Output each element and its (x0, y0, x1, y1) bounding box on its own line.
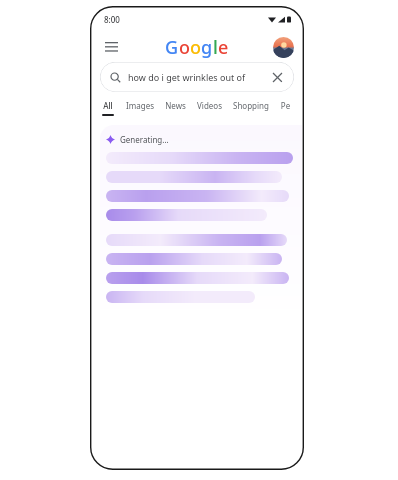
staticText: 8:00 (104, 14, 120, 25)
button[interactable]: Menu (100, 36, 122, 58)
button[interactable]: Videos (197, 100, 222, 114)
staticText: l (213, 35, 218, 60)
staticText: Perspective (280, 100, 291, 111)
staticText: o (190, 35, 201, 60)
staticText: Shopping (233, 100, 269, 111)
button[interactable]: Shopping (233, 100, 269, 114)
button[interactable]: All (102, 100, 114, 116)
button[interactable]: Perspective (280, 100, 291, 114)
staticText: Images (126, 100, 154, 111)
staticText: e (218, 35, 229, 60)
staticText: how do i get wrinkles out of cloth... (128, 71, 266, 83)
button[interactable]: how do i get wrinkles out of cloth... (100, 62, 294, 92)
staticText: News (165, 100, 186, 111)
staticText: g (201, 35, 213, 60)
button[interactable]: Images (126, 100, 154, 114)
button[interactable]: Account (273, 37, 294, 58)
staticText: Videos (197, 100, 222, 111)
staticText: o (179, 35, 190, 60)
staticText: All (103, 100, 113, 111)
staticText: G (165, 35, 179, 60)
button[interactable]: Clear search (270, 70, 284, 84)
button[interactable]: News (165, 100, 186, 114)
staticText: Generating... (120, 134, 169, 145)
